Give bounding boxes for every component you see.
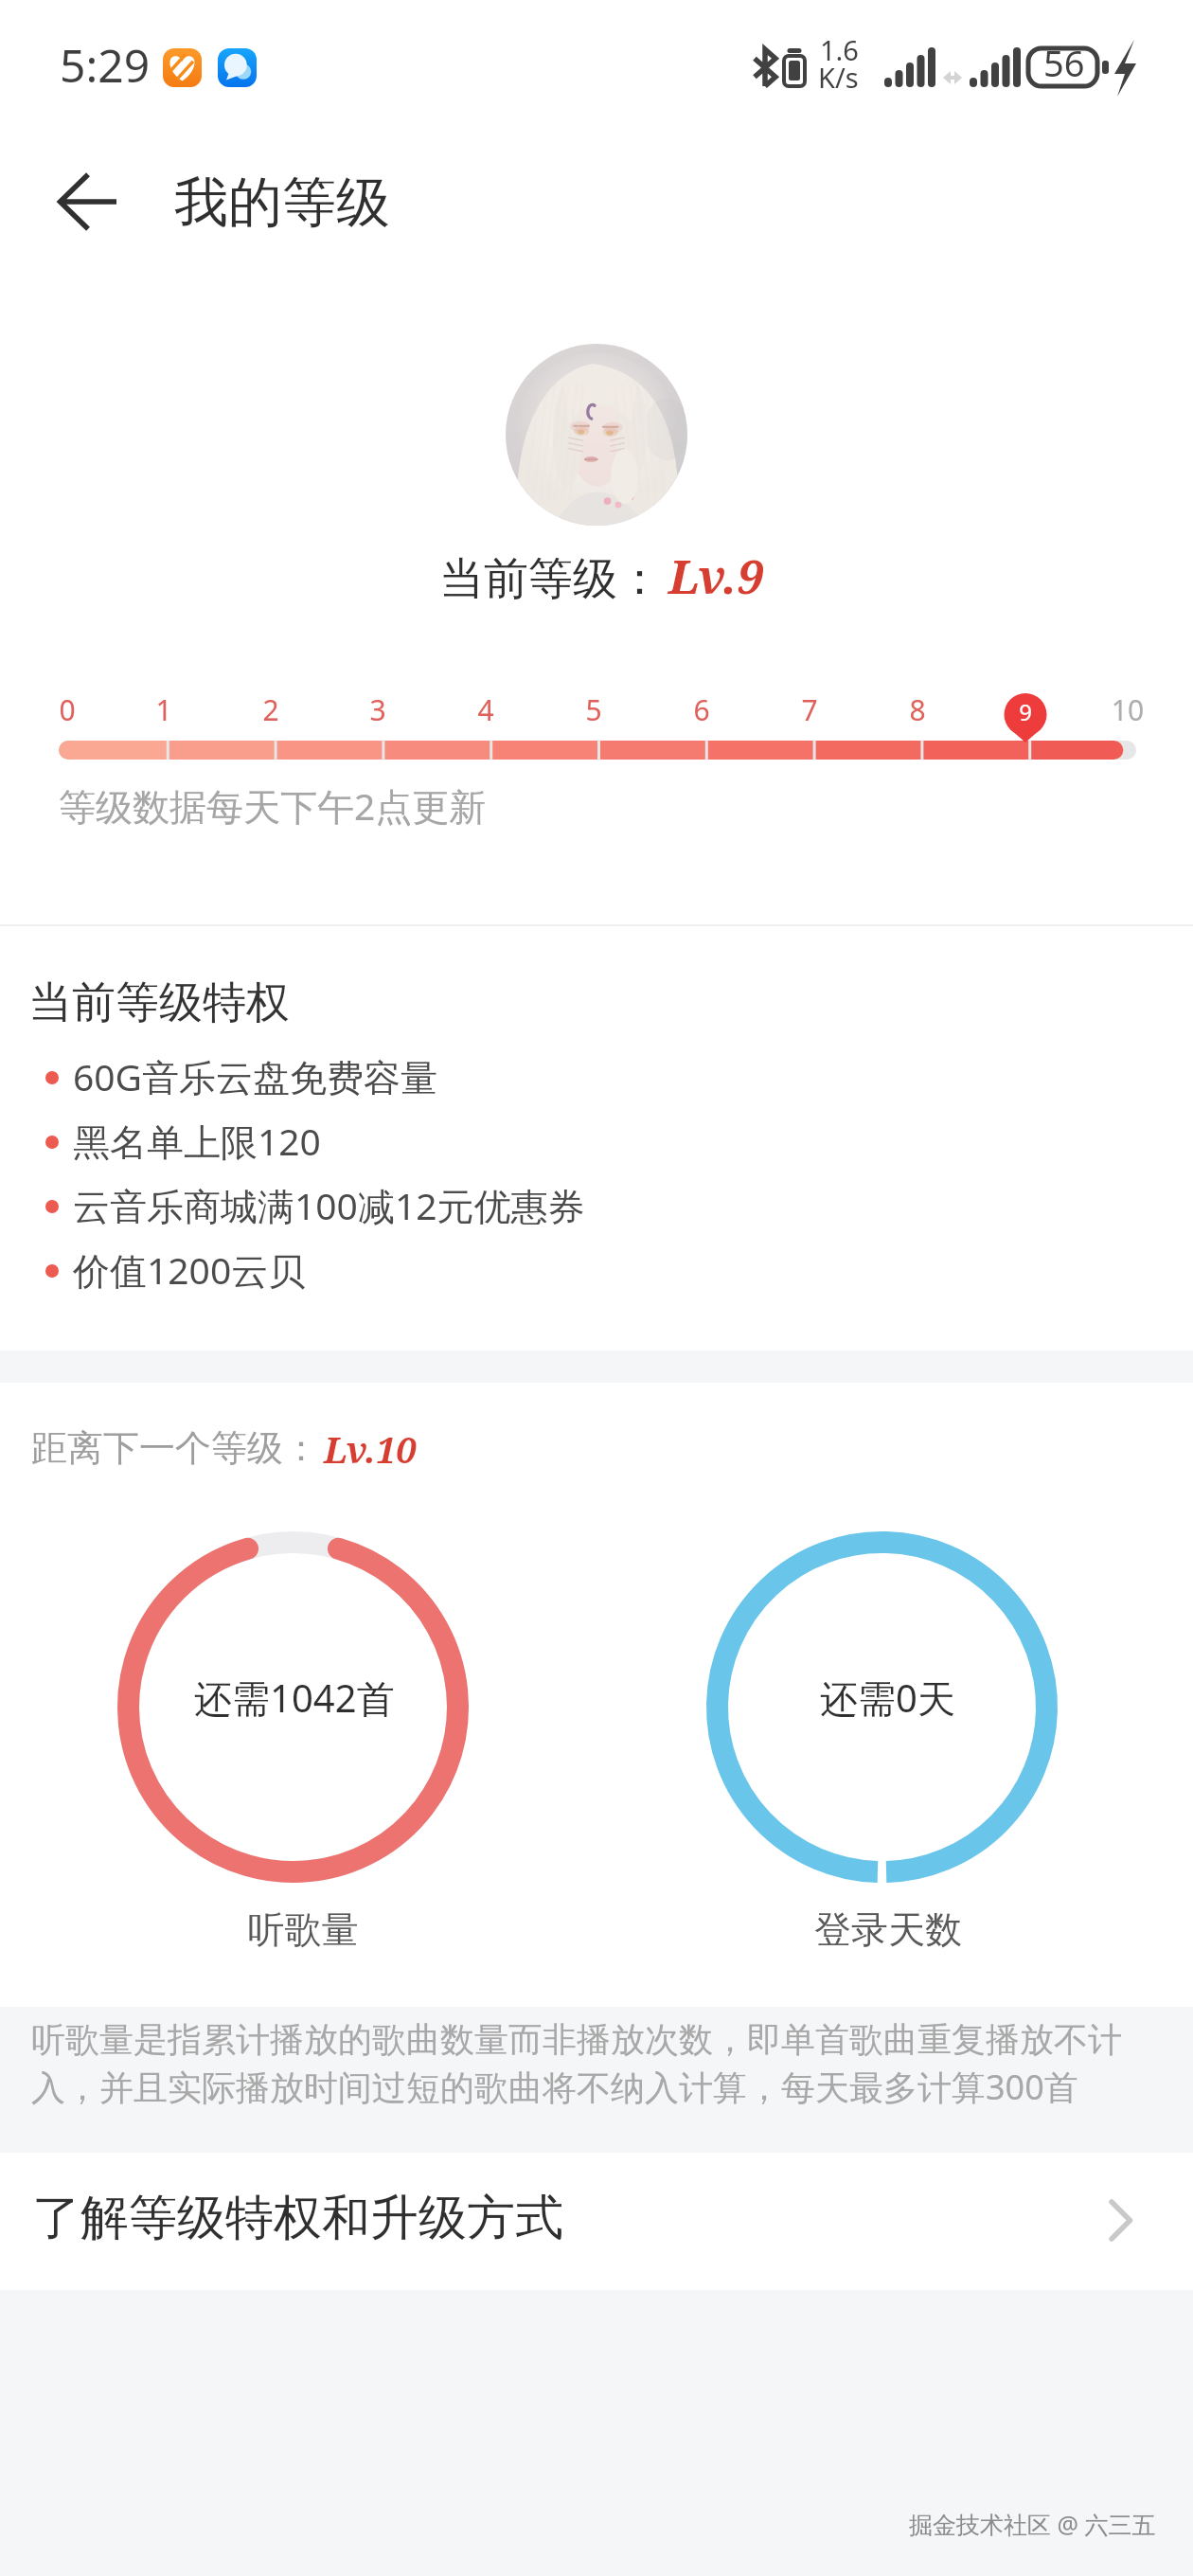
staticText: 当前等级特权 <box>28 975 290 1030</box>
staticText: 了解等级特权和升级方式 <box>32 2188 563 2248</box>
staticText: 当前等级： <box>439 551 662 607</box>
staticText: Lv.10 <box>324 1424 417 1474</box>
staticText: 7 <box>762 690 857 729</box>
staticText: 还需0天 <box>820 1672 955 1724</box>
staticText: 1.6 <box>820 31 859 68</box>
staticText: 5 <box>546 690 641 729</box>
staticText: 6 <box>654 690 749 729</box>
staticText: 3 <box>330 690 425 729</box>
staticText: 我的等级 <box>174 169 390 237</box>
staticText: 60G音乐云盘免费容量 <box>73 1051 438 1101</box>
button[interactable]: User avatar <box>506 344 687 526</box>
staticText: 1 <box>116 690 211 729</box>
button[interactable]: Back <box>27 140 150 263</box>
staticText: 听歌量是指累计播放的歌曲数量而非播放次数，即单首歌曲重复播放不计入，并且实际播放… <box>31 2018 1148 2110</box>
staticText: 5:29 <box>60 34 151 96</box>
button[interactable]: 了解等级特权和升级方式 <box>0 2152 1193 2290</box>
staticText: 56 <box>1043 38 1085 87</box>
staticText: 10 <box>1080 690 1175 729</box>
staticText: 2 <box>223 690 318 729</box>
staticText: 黑名单上限120 <box>73 1116 321 1166</box>
staticText: 0 <box>20 690 115 729</box>
staticText: 等级数据每天下午2点更新 <box>59 780 487 831</box>
staticText: 8 <box>870 690 965 729</box>
staticText: 4 <box>438 690 533 729</box>
staticText: 还需1042首 <box>194 1672 395 1724</box>
staticText: 9 <box>978 696 1073 727</box>
staticText: 距离下一个等级： <box>31 1425 319 1471</box>
staticText: 价值1200云贝 <box>73 1244 306 1295</box>
staticText: 云音乐商城满100减12元优惠券 <box>73 1180 585 1230</box>
staticText: 登录天数 <box>775 1906 1002 1953</box>
staticText: K/s <box>818 59 859 96</box>
staticText: Lv.9 <box>668 544 764 608</box>
staticText: 掘金技术社区 @ 六三五 <box>909 2508 1156 2540</box>
staticText: 听歌量 <box>189 1906 417 1953</box>
